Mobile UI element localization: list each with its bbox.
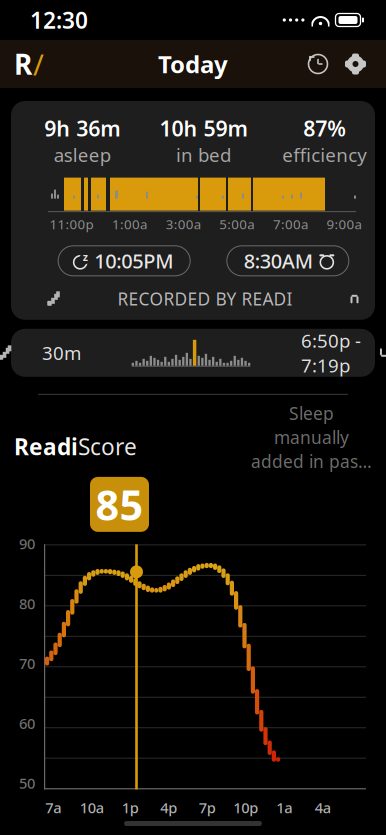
staticText: 6:50p - 7:19p bbox=[301, 328, 361, 378]
staticText: 4a bbox=[315, 798, 331, 817]
staticText: 10h 59m bbox=[159, 114, 247, 142]
staticText: 85 bbox=[95, 477, 143, 532]
staticText: 1:00a bbox=[112, 215, 147, 233]
staticText: Readi bbox=[14, 431, 78, 461]
staticText: 9h 36m bbox=[44, 114, 120, 142]
staticText: 1a bbox=[276, 798, 292, 817]
staticText: 8:30AM bbox=[244, 247, 313, 274]
button[interactable]: Readi bbox=[0, 34, 58, 93]
staticText: 10a bbox=[80, 798, 104, 817]
staticText: in bed bbox=[176, 142, 231, 167]
staticText: 7p bbox=[199, 798, 216, 817]
staticText: z bbox=[83, 250, 88, 264]
staticText: added in pas… bbox=[251, 450, 372, 473]
staticText: 60 bbox=[19, 713, 35, 733]
staticText: 11:00p bbox=[49, 215, 93, 233]
staticText: 7a bbox=[45, 798, 61, 817]
staticText: 7:00a bbox=[273, 215, 308, 233]
staticText: 1p bbox=[122, 798, 139, 817]
staticText: 3:00a bbox=[166, 215, 201, 233]
staticText: Score bbox=[78, 431, 137, 461]
staticText: 50 bbox=[19, 773, 35, 793]
staticText: 10:05PM bbox=[94, 247, 173, 274]
staticText: Sleep bbox=[289, 402, 334, 425]
staticText: 30m bbox=[42, 340, 81, 365]
button[interactable]: RECORDED BY READI bbox=[21, 278, 385, 320]
staticText: Today bbox=[158, 48, 228, 80]
staticText: 9:00a bbox=[326, 215, 361, 233]
staticText: 70 bbox=[19, 654, 35, 673]
button[interactable]: z bbox=[58, 246, 190, 276]
staticText: 10p bbox=[233, 798, 258, 817]
button[interactable]: 30m bbox=[11, 329, 375, 377]
staticText: manually bbox=[274, 426, 349, 449]
staticText: 87% bbox=[303, 114, 346, 142]
staticText: R bbox=[14, 45, 32, 83]
staticText: RECORDED BY READI bbox=[117, 287, 292, 310]
staticText: 12:30 bbox=[30, 5, 88, 35]
button[interactable]: Settings bbox=[337, 45, 374, 82]
staticText: 80 bbox=[19, 594, 35, 613]
staticText: / bbox=[33, 44, 44, 83]
staticText: efficiency bbox=[282, 142, 367, 167]
button[interactable]: 8:30AM bbox=[227, 246, 349, 276]
staticText: 4p bbox=[160, 798, 177, 817]
staticText: asleep bbox=[54, 142, 111, 167]
staticText: 5:00a bbox=[219, 215, 254, 233]
staticText: 90 bbox=[19, 534, 35, 553]
button[interactable]: History bbox=[299, 45, 337, 83]
